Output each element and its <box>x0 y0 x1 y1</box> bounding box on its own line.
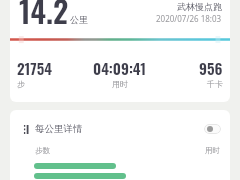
staticText: 每公里详情 <box>35 123 83 135</box>
staticText: 用时 <box>205 146 220 155</box>
staticText: 14.2 <box>19 0 69 32</box>
staticText: 21754 <box>17 57 52 79</box>
staticText: 2020/07/26 18:03 <box>156 13 222 24</box>
staticText: 千卡 <box>207 79 223 89</box>
staticText: 步数 <box>35 146 50 155</box>
staticText: 04:09:41 <box>93 57 147 79</box>
staticText: 武林慢点跑 <box>177 1 222 12</box>
staticText: 公里 <box>70 14 88 25</box>
staticText: 956 <box>199 57 223 79</box>
staticText: 用时 <box>112 79 128 89</box>
button[interactable]: Toggle per kilometre details <box>204 124 221 134</box>
staticText: 步 <box>17 79 25 89</box>
button[interactable]: 每公里详情 <box>10 113 230 145</box>
